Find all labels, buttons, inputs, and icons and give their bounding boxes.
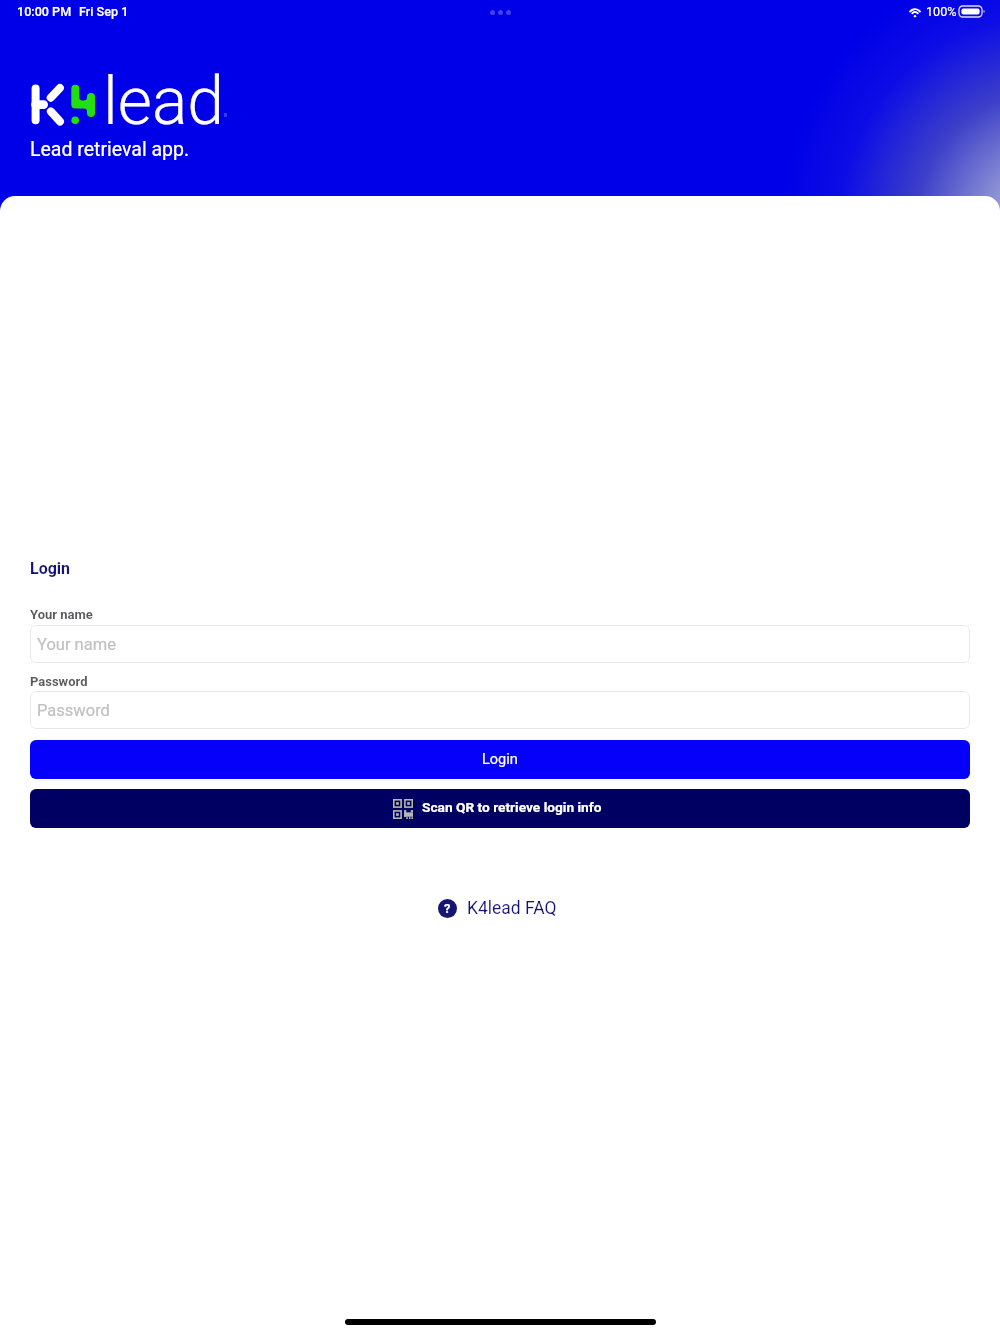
button[interactable]: Scan QR to retrieve login info (30, 789, 970, 828)
button[interactable]: ? (438, 898, 557, 919)
staticText: Fri Sep 1 (79, 4, 129, 19)
staticText: Your name (37, 635, 116, 654)
staticText: Login (482, 751, 518, 768)
staticText: lead (103, 63, 225, 140)
staticText: K4lead FAQ (467, 898, 557, 919)
staticText: 100% (926, 4, 957, 19)
staticText: Lead retrieval app. (30, 138, 190, 161)
staticText: Login (30, 559, 71, 578)
button[interactable]: Login (30, 740, 970, 779)
staticText: Scan QR to retrieve login info (422, 799, 602, 815)
staticText: 10:00 PM (17, 4, 72, 19)
staticText: Password (37, 701, 110, 720)
staticText: ? (444, 901, 451, 916)
button[interactable]: Password (30, 691, 970, 729)
staticText: Your name (30, 607, 93, 622)
button[interactable]: Your name (30, 625, 970, 663)
staticText: Password (30, 674, 88, 689)
